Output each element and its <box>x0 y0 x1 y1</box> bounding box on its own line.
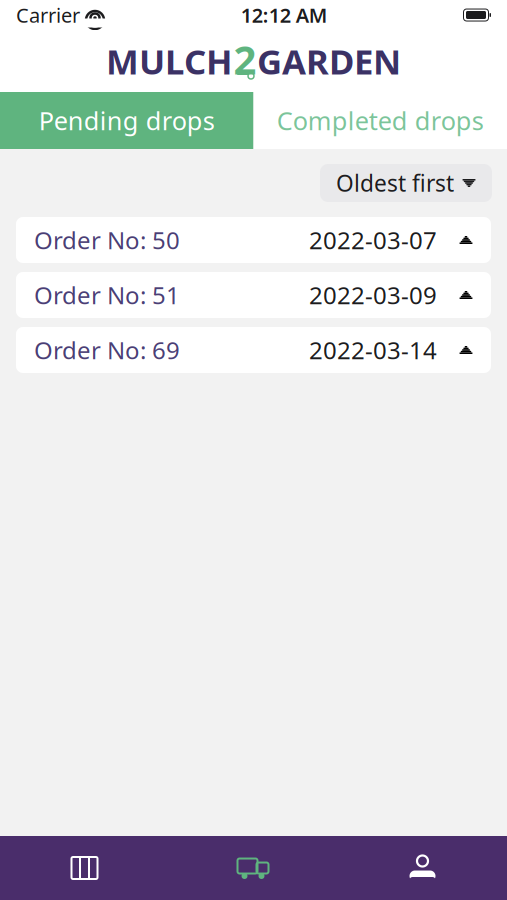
staticText: MULCH <box>106 38 233 84</box>
staticText: 2 <box>233 32 256 85</box>
staticText: 12:12 AM <box>241 2 328 28</box>
button[interactable]: Order No: 69 <box>16 327 491 373</box>
button[interactable]: Drops <box>169 836 338 900</box>
staticText: Completed drops <box>277 104 484 137</box>
button[interactable]: Map <box>0 836 169 900</box>
button[interactable]: Pending drops <box>0 92 253 149</box>
staticText: Order No: 50 <box>34 224 180 256</box>
button[interactable]: Oldest first <box>320 164 492 202</box>
staticText: GARDEN <box>257 38 401 84</box>
button[interactable]: Order No: 51 <box>16 272 491 318</box>
button[interactable]: Completed drops <box>253 92 507 149</box>
button[interactable]: Order No: 50 <box>16 217 491 263</box>
staticText: Carrier <box>16 2 80 28</box>
button[interactable]: Profile <box>338 836 507 900</box>
staticText: Order No: 51 <box>34 279 180 311</box>
staticText: 2022-03-09 <box>309 279 437 311</box>
staticText: 2022-03-07 <box>309 224 437 256</box>
staticText: Oldest first <box>336 168 454 198</box>
staticText: 2022-03-14 <box>309 334 437 366</box>
staticText: Order No: 69 <box>34 334 180 366</box>
staticText: Pending drops <box>39 104 215 137</box>
